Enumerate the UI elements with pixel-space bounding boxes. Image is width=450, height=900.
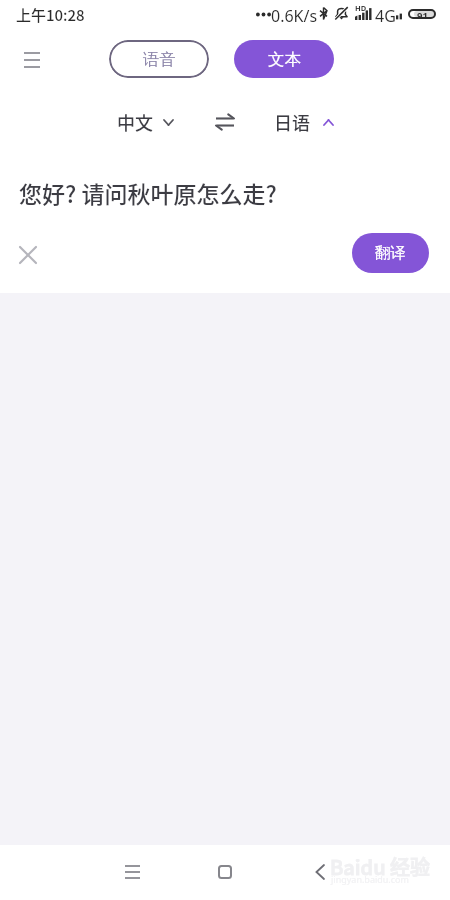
- button[interactable]: 翻译: [352, 233, 429, 273]
- staticText: 文本: [268, 49, 301, 70]
- button[interactable]: Recent apps: [115, 855, 149, 889]
- button[interactable]: Home: [208, 855, 242, 889]
- staticText: 您好? 请问秋叶原怎么走?: [19, 176, 277, 209]
- button[interactable]: 日语: [268, 103, 339, 141]
- staticText: 上午10:28: [16, 4, 85, 26]
- staticText: HD: [355, 3, 367, 13]
- staticText: 0.6K/s: [271, 5, 318, 27]
- button[interactable]: Swap languages: [210, 107, 240, 137]
- button[interactable]: 中文: [111, 103, 179, 141]
- button[interactable]: 文本: [234, 40, 334, 78]
- button[interactable]: Clear text: [12, 239, 44, 271]
- staticText: 91: [417, 9, 428, 19]
- staticText: 日语: [274, 109, 310, 135]
- staticText: 4G: [375, 5, 396, 27]
- staticText: Baidu 经验: [330, 852, 431, 881]
- button[interactable]: Menu: [15, 43, 49, 77]
- staticText: 中文: [117, 109, 153, 135]
- staticText: jingyan.baidu.com: [331, 873, 409, 885]
- button[interactable]: Back: [303, 855, 337, 889]
- staticText: 语音: [143, 49, 176, 70]
- button[interactable]: 语音: [109, 40, 209, 78]
- staticText: 翻译: [375, 243, 406, 263]
